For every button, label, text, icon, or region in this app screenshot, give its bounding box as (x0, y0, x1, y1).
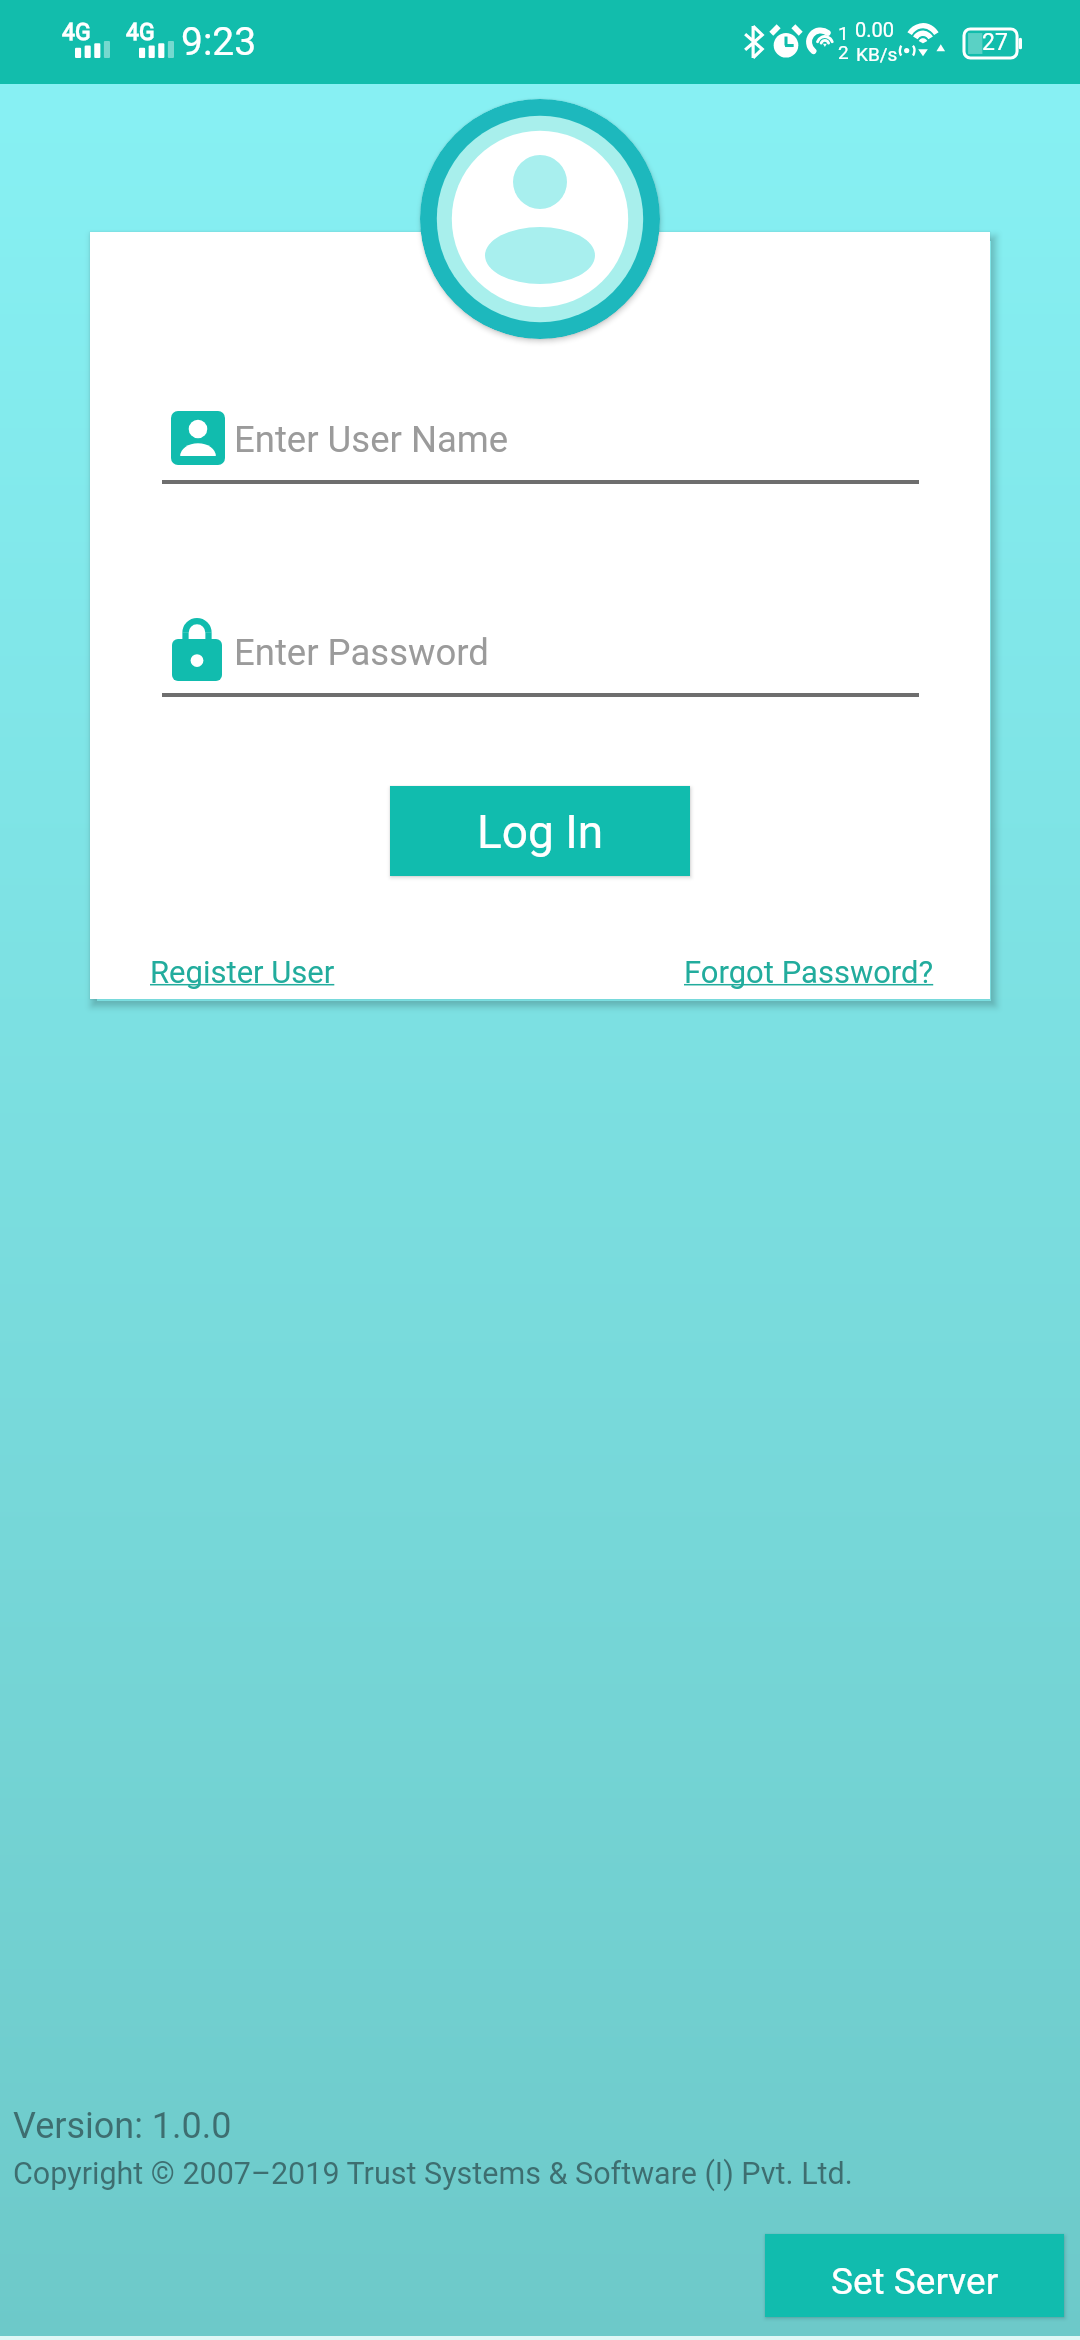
staticText: 1 (838, 22, 849, 44)
staticText: 9:23 (181, 19, 257, 65)
button[interactable]: Enter User Name (162, 401, 919, 484)
staticText: Forgot Password? (684, 954, 934, 990)
button[interactable]: Set Server (765, 2234, 1064, 2317)
other: Bluetooth (744, 25, 763, 59)
other: Wi-Fi (899, 24, 947, 59)
staticText: Log In (477, 805, 604, 859)
staticText: Version: 1.0.0 (13, 2105, 232, 2147)
staticText: KB/s (856, 43, 898, 65)
staticText: 27 (982, 29, 1008, 56)
button[interactable]: Log In (390, 786, 690, 876)
button[interactable]: Register User (150, 954, 335, 990)
other: Alarm (770, 26, 802, 58)
staticText: 0.00 (855, 18, 894, 41)
staticText: Copyright © 2007–2019 Trust Systems & So… (13, 2156, 853, 2192)
staticText: 4G (126, 19, 155, 46)
button[interactable]: Enter Password (162, 614, 919, 697)
staticText: 4G (62, 19, 91, 46)
button[interactable]: Forgot Password? (684, 954, 934, 990)
staticText: 2 (838, 41, 849, 63)
staticText: Register User (150, 954, 335, 990)
staticText: Enter User Name (234, 418, 509, 461)
staticText: Set Server (831, 2260, 999, 2303)
staticText: Enter Password (234, 631, 489, 674)
